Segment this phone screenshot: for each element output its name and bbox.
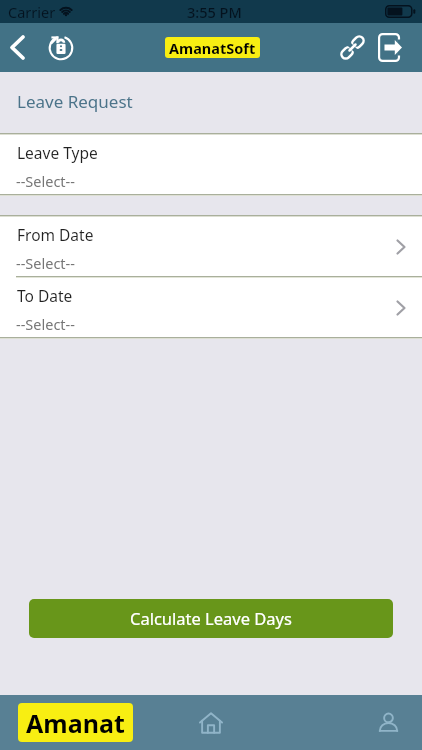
button[interactable]: From Date [0,217,422,276]
staticText: Calculate Leave Days [130,607,292,629]
staticText: Leave Type [17,142,98,163]
button[interactable]: Calculate Leave Days [29,599,393,638]
staticText: Leave Request [17,90,133,113]
button[interactable]: Leave Type [0,135,422,194]
staticText: --Select-- [16,253,75,273]
button[interactable]: Link [334,23,370,72]
button[interactable]: Logout [372,23,408,72]
staticText: From Date [17,224,94,245]
staticText: To Date [17,285,73,306]
button[interactable]: To Date [0,278,422,337]
staticText: Amanat [26,706,125,740]
staticText: AmanatSoft [169,38,256,58]
button[interactable]: Back [0,23,35,72]
button[interactable]: Home [186,698,236,748]
button[interactable]: Profile [363,698,413,748]
staticText: 3:55 PM [187,2,242,22]
staticText: --Select-- [16,314,75,334]
staticText: --Select-- [16,171,75,191]
staticText: Carrier [8,2,56,22]
button[interactable]: Change password [43,23,79,72]
button[interactable]: Amanat [18,703,133,742]
button[interactable]: AmanatSoft [165,37,260,58]
